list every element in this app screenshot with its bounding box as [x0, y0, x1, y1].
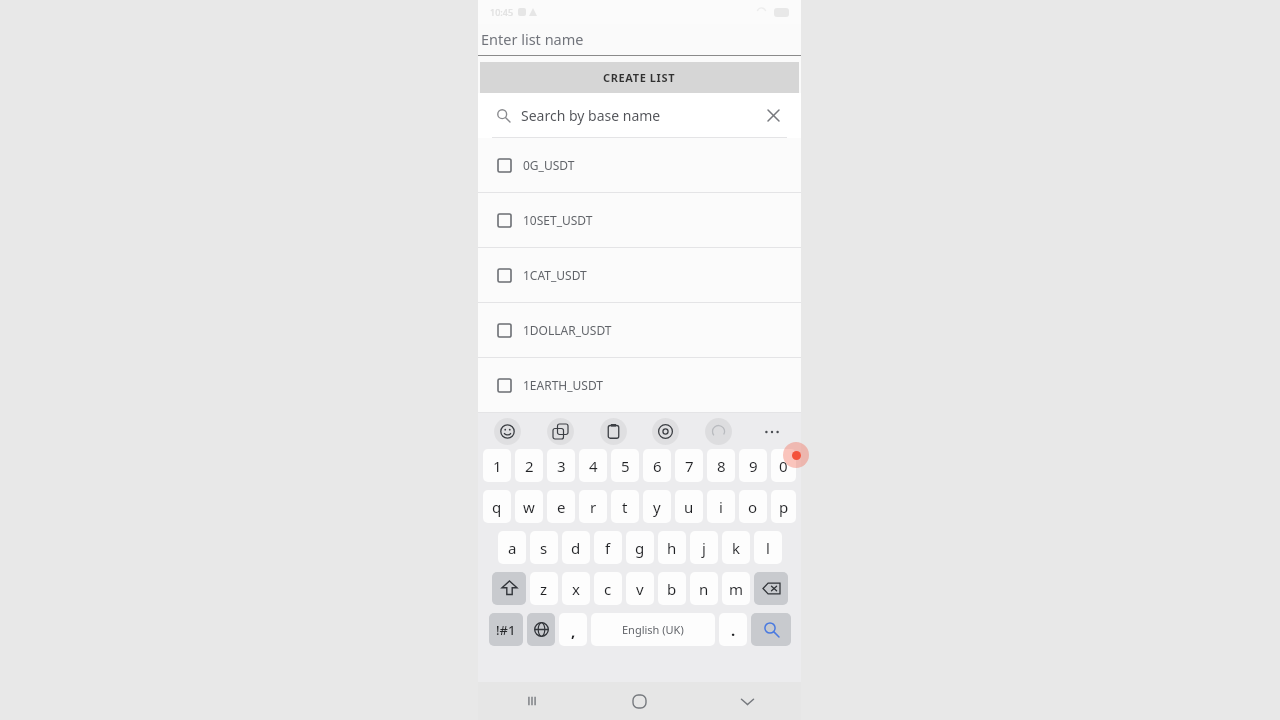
button[interactable]: Search: [751, 613, 791, 646]
staticText: 0: [779, 456, 788, 476]
button[interactable]: t: [611, 490, 639, 523]
button[interactable]: c: [594, 572, 622, 605]
button[interactable]: Clipboard: [600, 418, 627, 445]
button[interactable]: n: [690, 572, 718, 605]
button[interactable]: b: [658, 572, 686, 605]
button[interactable]: 7: [675, 449, 703, 482]
staticText: u: [684, 497, 694, 517]
button[interactable]: Emoji: [494, 418, 521, 445]
staticText: q: [492, 497, 502, 517]
staticText: English (UK): [622, 622, 684, 637]
button[interactable]: Shift: [492, 572, 526, 605]
button[interactable]: z: [530, 572, 558, 605]
staticText: 9: [749, 456, 758, 476]
staticText: ,: [571, 621, 576, 641]
button[interactable]: q: [483, 490, 511, 523]
other: Search: [497, 109, 510, 122]
button[interactable]: k: [722, 531, 750, 564]
staticText: 6: [653, 456, 662, 476]
staticText: 10:45: [490, 6, 514, 18]
staticText: Search by base name: [521, 106, 661, 125]
button[interactable]: 8: [707, 449, 735, 482]
staticText: 3: [557, 456, 566, 476]
staticText: 1EARTH_USDT: [523, 377, 603, 393]
button[interactable]: r: [579, 490, 607, 523]
staticText: t: [622, 497, 628, 517]
button[interactable]: Settings: [652, 418, 679, 445]
staticText: v: [636, 579, 644, 599]
button[interactable]: p: [771, 490, 796, 523]
button[interactable]: Hide keyboard: [693, 682, 801, 720]
staticText: 8: [717, 456, 726, 476]
button[interactable]: 0G_USDT: [478, 138, 801, 192]
button[interactable]: h: [658, 531, 686, 564]
button[interactable]: x: [562, 572, 590, 605]
button[interactable]: Enter list name: [478, 24, 801, 56]
staticText: r: [590, 497, 597, 517]
button[interactable]: l: [754, 531, 782, 564]
staticText: 2: [525, 456, 534, 476]
button[interactable]: 5: [611, 449, 639, 482]
button[interactable]: Backspace: [754, 572, 788, 605]
staticText: !#1: [496, 621, 516, 639]
button[interactable]: u: [675, 490, 703, 523]
staticText: m: [729, 579, 744, 599]
staticText: 1DOLLAR_USDT: [523, 322, 612, 338]
button[interactable]: 0: [771, 449, 796, 482]
button[interactable]: CREATE LIST: [480, 62, 799, 93]
button[interactable]: w: [515, 490, 543, 523]
button[interactable]: 3: [547, 449, 575, 482]
button[interactable]: 1: [483, 449, 511, 482]
staticText: p: [779, 497, 789, 517]
button[interactable]: Translate: [547, 418, 574, 445]
button[interactable]: e: [547, 490, 575, 523]
staticText: k: [732, 538, 741, 558]
button[interactable]: v: [626, 572, 654, 605]
staticText: 10SET_USDT: [523, 212, 593, 228]
staticText: 0G_USDT: [523, 157, 575, 173]
staticText: b: [667, 579, 677, 599]
button[interactable]: ,: [559, 613, 587, 646]
button[interactable]: !#1: [489, 613, 523, 646]
staticText: z: [540, 579, 548, 599]
button[interactable]: 10SET_USDT: [478, 193, 801, 247]
staticText: a: [508, 538, 517, 558]
button[interactable]: More options: [758, 418, 785, 445]
button[interactable]: Clear: [758, 100, 788, 130]
button[interactable]: Change language: [527, 613, 555, 646]
staticText: 4: [589, 456, 598, 476]
button[interactable]: o: [739, 490, 767, 523]
staticText: e: [557, 497, 566, 517]
button[interactable]: m: [722, 572, 750, 605]
staticText: w: [523, 497, 535, 517]
button[interactable]: Search: [478, 93, 801, 137]
staticText: Enter list name: [481, 29, 584, 49]
button[interactable]: j: [690, 531, 718, 564]
button[interactable]: y: [643, 490, 671, 523]
button[interactable]: d: [562, 531, 590, 564]
staticText: f: [605, 538, 611, 558]
button[interactable]: English (UK): [591, 613, 715, 646]
button[interactable]: 1CAT_USDT: [478, 248, 801, 302]
button[interactable]: f: [594, 531, 622, 564]
button[interactable]: 4: [579, 449, 607, 482]
button[interactable]: 1DOLLAR_USDT: [478, 303, 801, 357]
staticText: 7: [685, 456, 694, 476]
button[interactable]: g: [626, 531, 654, 564]
button[interactable]: Translate mode: [705, 418, 732, 445]
button[interactable]: Home: [585, 682, 693, 720]
button[interactable]: 1EARTH_USDT: [478, 358, 801, 412]
button[interactable]: .: [719, 613, 747, 646]
button[interactable]: 2: [515, 449, 543, 482]
staticText: o: [748, 497, 758, 517]
staticText: n: [699, 579, 709, 599]
button[interactable]: Recents: [478, 682, 585, 720]
button[interactable]: 9: [739, 449, 767, 482]
button[interactable]: i: [707, 490, 735, 523]
button[interactable]: a: [498, 531, 526, 564]
button[interactable]: 6: [643, 449, 671, 482]
staticText: s: [540, 538, 548, 558]
staticText: y: [653, 497, 661, 517]
button[interactable]: s: [530, 531, 558, 564]
staticText: g: [635, 538, 645, 558]
